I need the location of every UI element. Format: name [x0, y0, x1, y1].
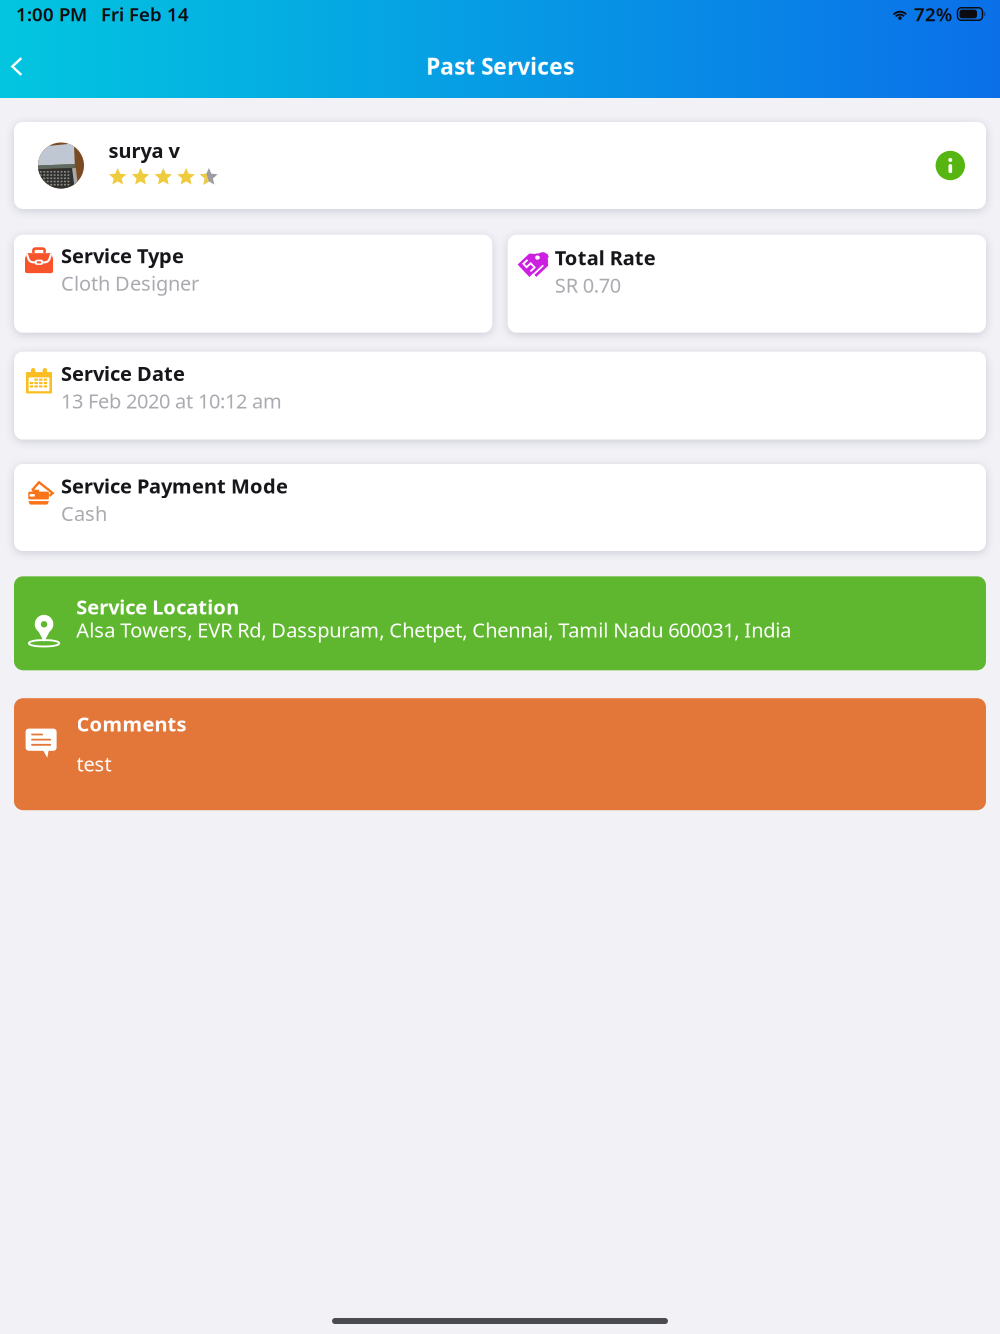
button[interactable]: surya v [14, 122, 986, 209]
staticText: 72% [914, 2, 952, 26]
staticText: Service Location [76, 593, 239, 620]
staticText: 1:00 PM [16, 2, 87, 26]
staticText: Service Type [61, 242, 184, 269]
staticText: Service Payment Mode [61, 472, 288, 499]
button[interactable]: Service Type [14, 235, 492, 333]
staticText: Cash [61, 500, 107, 527]
staticText: Comments [77, 710, 187, 737]
button[interactable]: Service Date [14, 352, 986, 440]
staticText: 13 Feb 2020 at 10:12 am [61, 388, 282, 414]
staticText: Fri Feb 14 [101, 2, 189, 26]
staticText: SR 0.70 [555, 272, 621, 298]
staticText: Alsa Towers, EVR Rd, Dasspuram, Chetpet,… [76, 616, 791, 643]
button[interactable]: Total Rate [508, 235, 986, 333]
button[interactable]: Back [0, 38, 34, 84]
button[interactable]: Comments [14, 698, 986, 810]
staticText: Service Date [61, 360, 185, 387]
button[interactable]: Service Payment Mode [14, 464, 986, 551]
staticText: Total Rate [555, 244, 656, 271]
staticText: Cloth Designer [61, 270, 199, 296]
staticText: Past Services [426, 51, 574, 81]
staticText: surya v [108, 137, 179, 164]
button[interactable]: Service Location [14, 576, 986, 670]
staticText: test [77, 751, 112, 777]
